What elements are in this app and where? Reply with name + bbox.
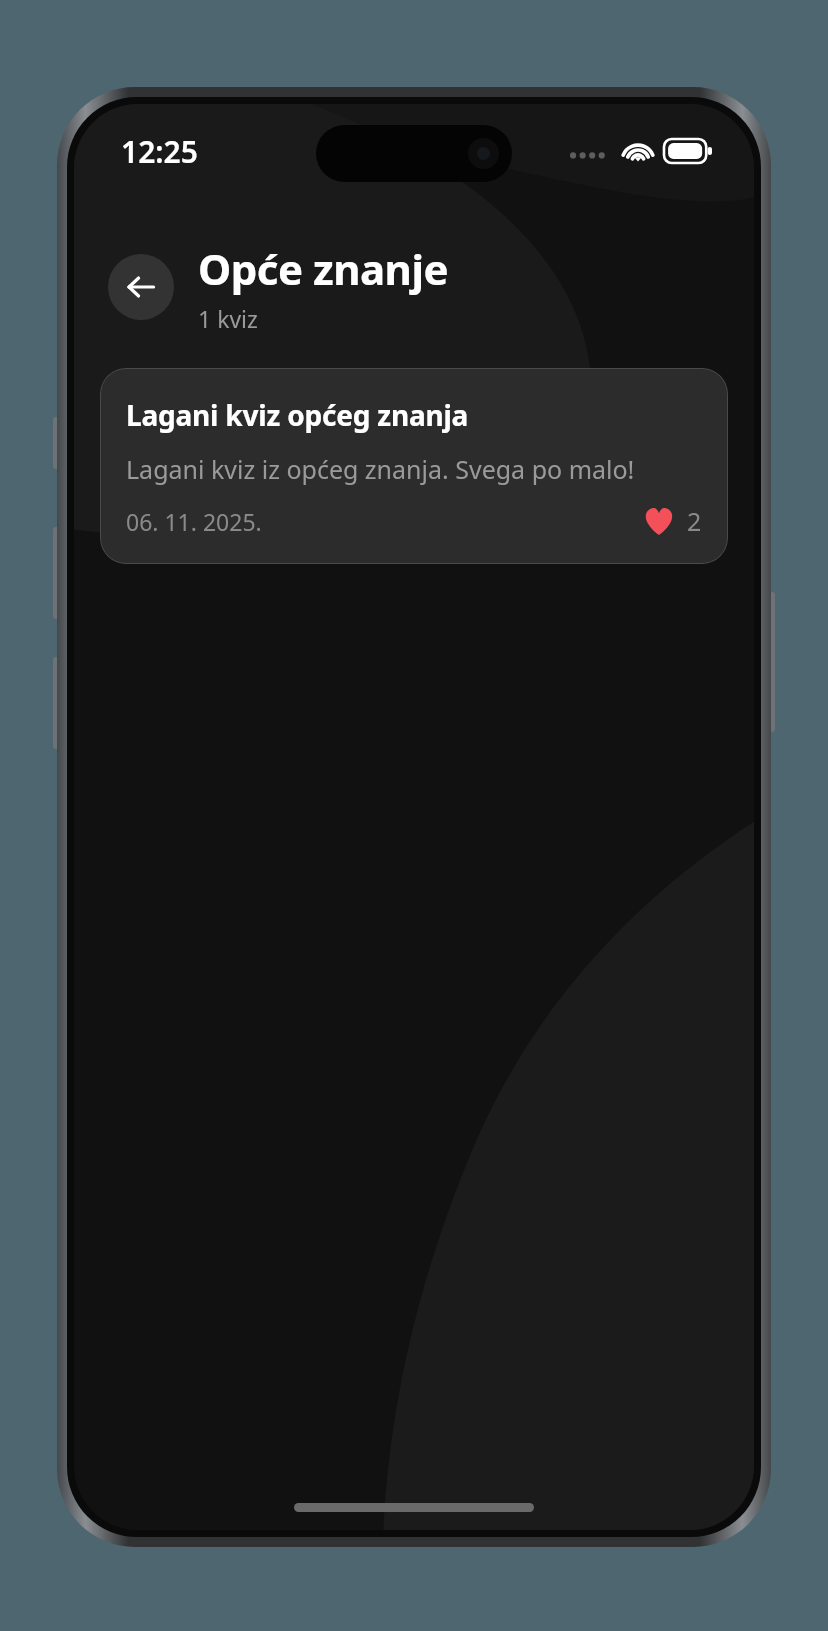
staticText: 06. 11. 2025. bbox=[126, 506, 262, 537]
button[interactable]: Back bbox=[108, 254, 174, 320]
button[interactable]: Lagani kviz općeg znanja bbox=[100, 368, 728, 564]
staticText: Lagani kviz iz općeg znanja. Svega po ma… bbox=[126, 452, 635, 486]
staticText: 12:25 bbox=[121, 131, 198, 172]
button[interactable]: Likes bbox=[643, 504, 702, 538]
staticText: 2 bbox=[687, 504, 702, 538]
staticText: 1 kviz bbox=[198, 303, 258, 334]
staticText: Lagani kviz općeg znanja bbox=[126, 396, 469, 434]
staticText: Opće znanje bbox=[198, 240, 448, 297]
